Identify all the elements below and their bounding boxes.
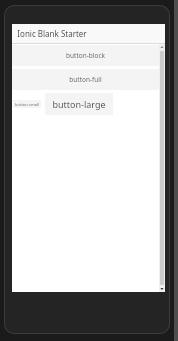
button[interactable]: button-full	[12, 69, 159, 90]
staticText: button-block	[66, 51, 105, 60]
button[interactable]: button-block	[12, 45, 159, 66]
button[interactable]: button-large	[45, 93, 113, 115]
button[interactable]: Scroll up	[159, 44, 165, 50]
button[interactable]: button-small	[13, 100, 41, 108]
staticText: button-full	[69, 75, 102, 84]
staticText: button-large	[52, 98, 106, 110]
button[interactable]: Scroll down	[159, 286, 165, 292]
staticText: Ionic Blank Starter	[17, 28, 87, 39]
staticText: button-small	[15, 102, 39, 107]
